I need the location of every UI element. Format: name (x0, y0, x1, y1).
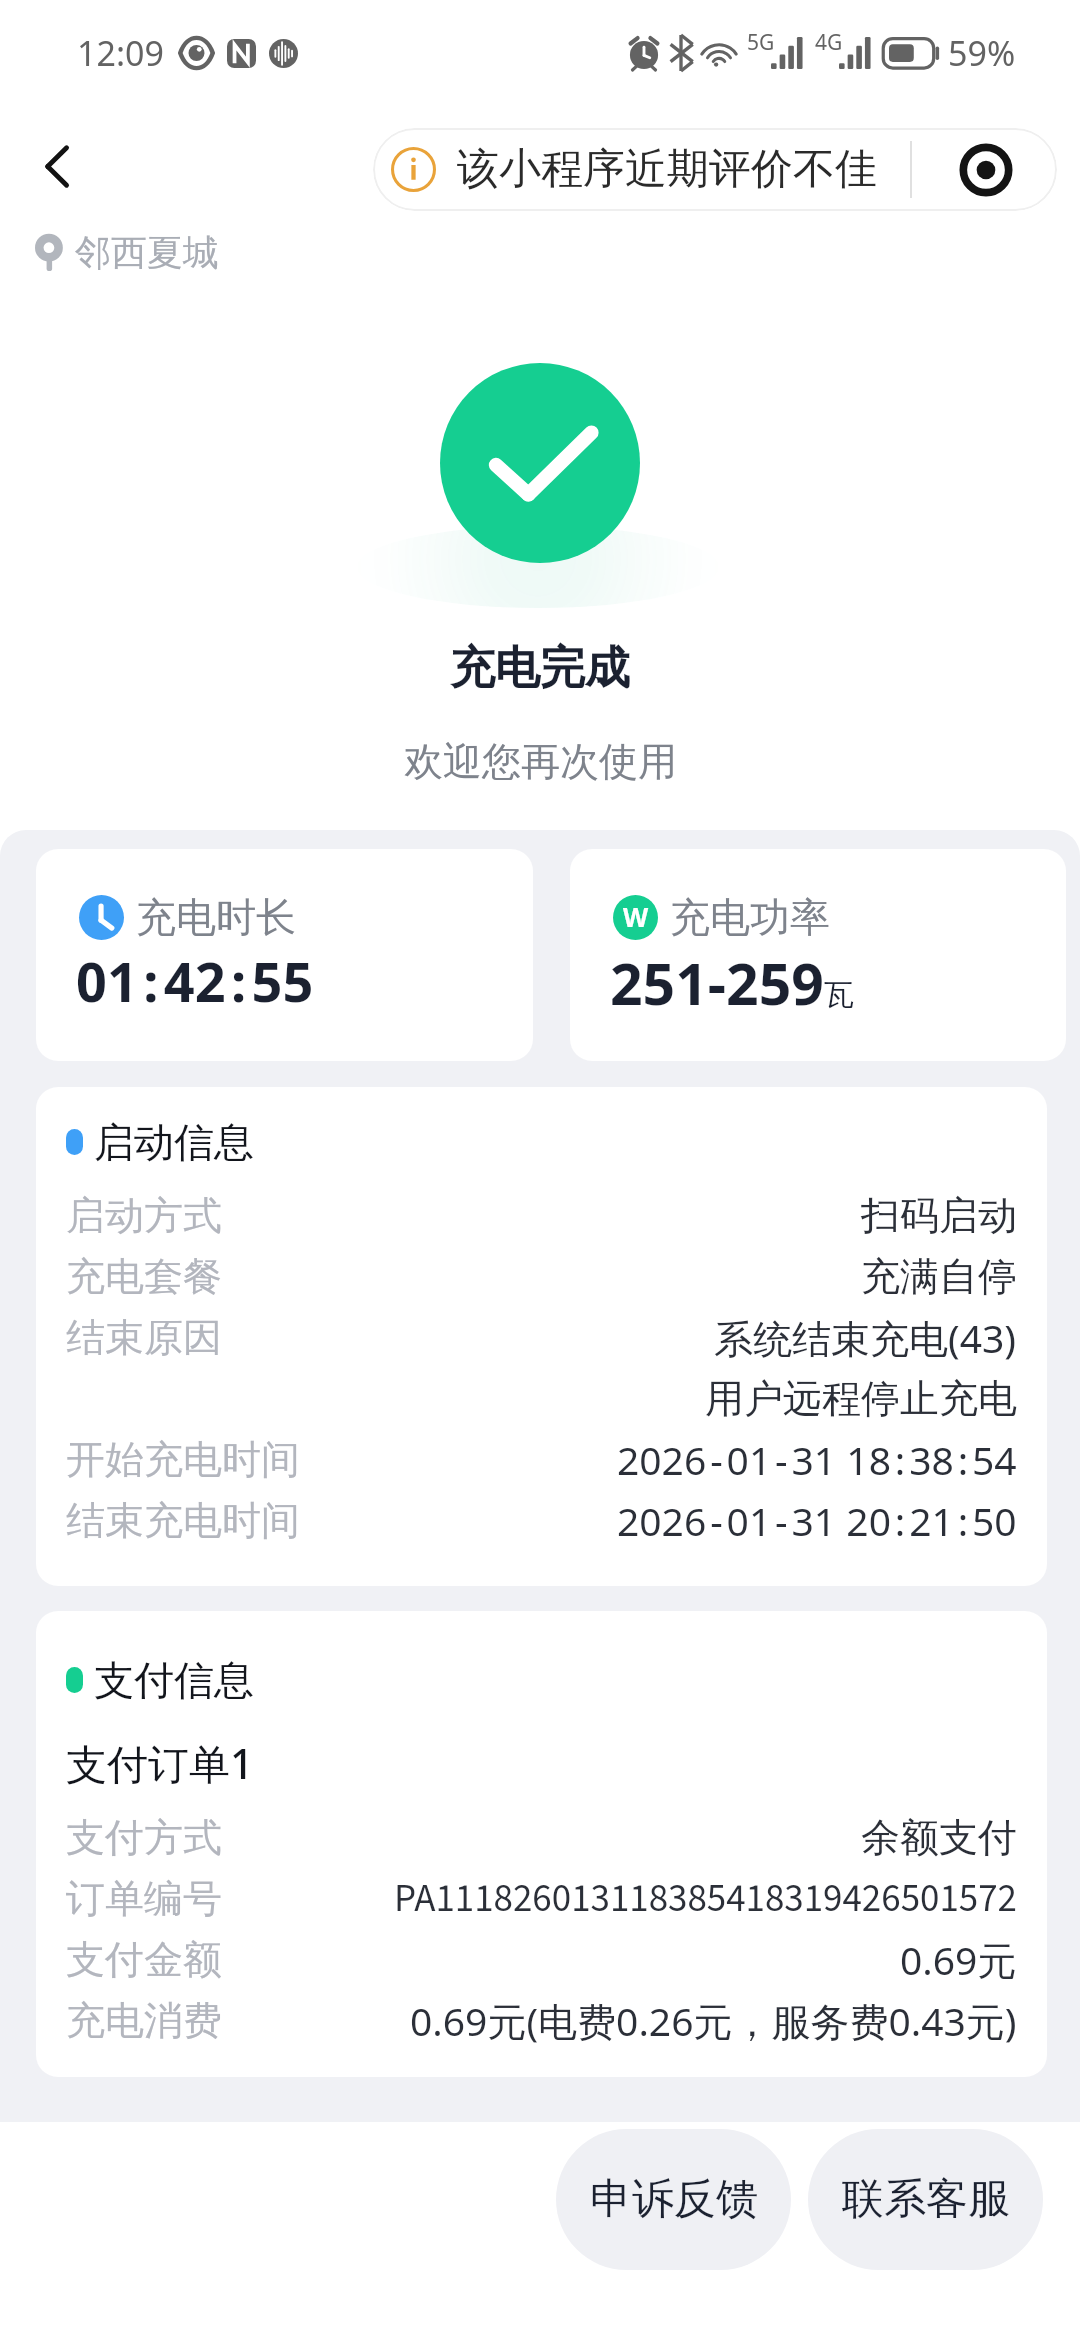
staticText: 扫码启动 (861, 1191, 1017, 1240)
button[interactable]: Back (21, 130, 93, 202)
button[interactable]: 申诉反馈 (556, 2129, 791, 2270)
staticText: 0.69元 (900, 1933, 1017, 1986)
staticText: 支付信息 (94, 1655, 254, 1705)
staticText: 支付订单1 (66, 1735, 254, 1791)
staticText: 结束原因 (66, 1313, 222, 1362)
staticText: 余额支付 (861, 1813, 1017, 1862)
staticText: 启动信息 (94, 1117, 254, 1167)
staticText: 01 : 42 : 55 (76, 944, 314, 1018)
staticText: 支付金额 (66, 1935, 222, 1984)
staticText: 支付方式 (66, 1813, 222, 1862)
staticText: 2026 - 01 - 31 18 : 38 : 54 (617, 1433, 1017, 1486)
staticText: 欢迎您再次使用 (404, 737, 677, 786)
staticText: 订单编号 (66, 1874, 222, 1923)
staticText: W (623, 899, 649, 934)
staticText: 充满自停 (861, 1252, 1017, 1301)
button[interactable]: 该小程序近期评价不佳 (373, 128, 1057, 211)
staticText: 4G (815, 28, 843, 57)
staticText: 邻西夏城 (75, 230, 219, 275)
staticText: 充电套餐 (66, 1252, 222, 1301)
staticText: 该小程序近期评价不佳 (457, 143, 877, 196)
staticText: 2026 - 01 - 31 20 : 21 : 50 (617, 1494, 1017, 1547)
staticText: 59% (948, 30, 1016, 76)
staticText: 用户远程停止充电 (705, 1374, 1017, 1423)
staticText: 结束充电时间 (66, 1496, 300, 1545)
staticText: PA111826013118385418319426501572 (394, 1871, 1017, 1927)
staticText: 开始充电时间 (66, 1435, 300, 1484)
staticText: 充电时长 (136, 892, 296, 942)
staticText: 充电完成 (450, 640, 630, 697)
staticText: 5G (747, 28, 775, 57)
staticText: 充电功率 (670, 892, 830, 942)
staticText: 12:09 (77, 30, 164, 76)
button[interactable]: 充电时长 (36, 849, 533, 1061)
staticText: 251-259 (610, 944, 824, 1022)
staticText: 充电消费 (66, 1996, 222, 2045)
staticText: 0.69元(电费0.26元，服务费0.43元) (410, 1994, 1017, 2047)
staticText: 申诉反馈 (590, 2173, 758, 2226)
staticText: 联系客服 (842, 2173, 1010, 2226)
button[interactable]: 联系客服 (808, 2129, 1043, 2270)
button[interactable]: W (570, 849, 1066, 1061)
staticText: 启动方式 (66, 1191, 222, 1240)
staticText: 系统结束充电(43) (714, 1311, 1017, 1364)
staticText: 瓦 (824, 976, 854, 1014)
